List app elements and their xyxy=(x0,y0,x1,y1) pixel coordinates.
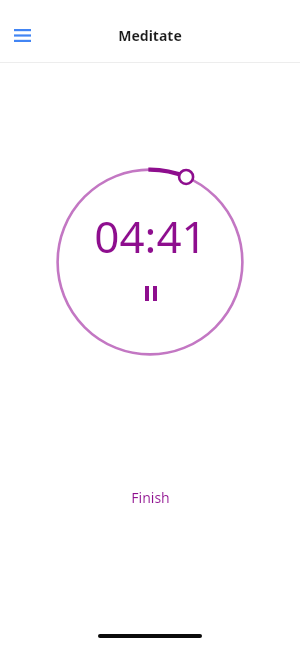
staticText: 04:41 xyxy=(94,206,207,266)
button[interactable]: Pause meditation timer xyxy=(134,276,168,310)
button[interactable]: Finish xyxy=(113,480,188,515)
staticText: Meditate xyxy=(118,26,182,45)
staticText: Finish xyxy=(131,488,170,507)
button[interactable]: Open navigation menu xyxy=(2,15,42,55)
